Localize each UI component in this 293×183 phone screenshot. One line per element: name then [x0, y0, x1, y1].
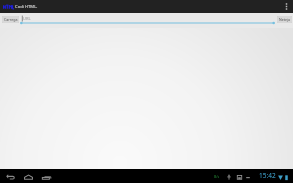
- staticText: URL: [23, 16, 31, 21]
- button[interactable]: More options: [280, 0, 293, 13]
- staticText: B/s: [214, 174, 220, 179]
- button[interactable]: Neteja: [277, 16, 292, 23]
- staticText: Carrega: [4, 17, 18, 22]
- button[interactable]: Carrega: [2, 16, 19, 23]
- button[interactable]: Home: [19, 169, 37, 183]
- staticText: Codi HTML.: [15, 4, 38, 10]
- staticText: Neteja: [279, 17, 291, 22]
- button[interactable]: Back: [1, 169, 19, 183]
- staticText: 15:42: [259, 171, 276, 180]
- button[interactable]: Recent apps: [37, 169, 55, 183]
